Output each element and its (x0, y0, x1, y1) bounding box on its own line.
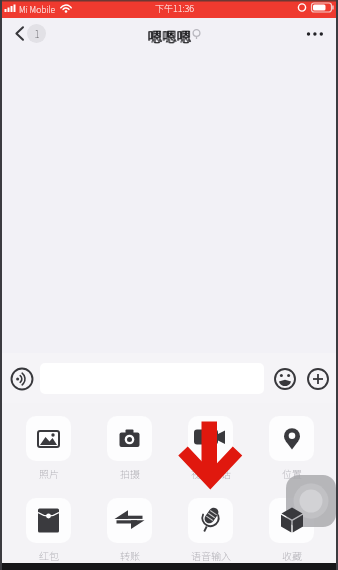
staticText: 视频通话 (191, 466, 231, 480)
button[interactable] (26, 498, 71, 543)
button[interactable] (9, 366, 35, 392)
staticText: 拍摄 (120, 466, 140, 480)
staticText: 嗯嗯嗯 (148, 25, 192, 44)
button[interactable] (27, 24, 46, 43)
staticText: 嗯嗯嗯 (147, 25, 191, 44)
staticText: 转账 (120, 548, 140, 562)
staticText: Mi Mobile (19, 3, 55, 15)
button[interactable] (107, 498, 152, 543)
staticText: 照片 (39, 466, 59, 480)
staticText: 1 (34, 26, 40, 41)
button[interactable] (274, 368, 296, 390)
button[interactable] (269, 498, 314, 543)
button[interactable] (269, 416, 314, 461)
button[interactable] (298, 24, 330, 44)
staticText: 收藏 (282, 548, 302, 562)
staticText: 语音输入 (191, 548, 231, 562)
button[interactable] (107, 416, 152, 461)
staticText: 下午11:36 (155, 2, 194, 15)
button[interactable] (8, 22, 30, 44)
staticText: 位置 (282, 466, 302, 480)
button[interactable] (188, 416, 233, 461)
button[interactable] (188, 498, 233, 543)
button[interactable] (26, 416, 71, 461)
button[interactable] (286, 475, 336, 527)
staticText: 红包 (39, 548, 59, 562)
button[interactable] (307, 368, 329, 390)
